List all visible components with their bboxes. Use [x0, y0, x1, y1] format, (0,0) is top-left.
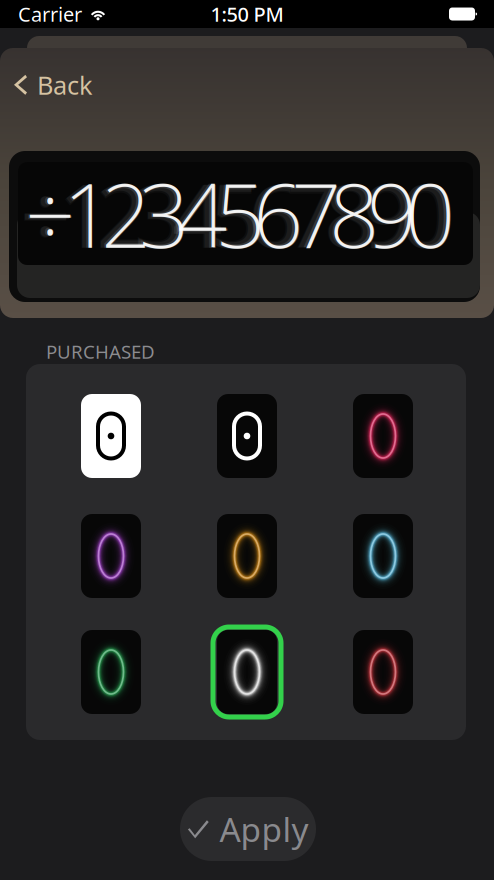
- staticText: 1: [58, 155, 128, 272]
- staticText: 2: [99, 155, 163, 272]
- button[interactable]: Calculator theme: [69, 618, 153, 726]
- staticText: 9: [362, 155, 433, 272]
- staticText: 2: [101, 155, 162, 272]
- staticText: 7: [291, 155, 352, 272]
- staticText: 6: [248, 155, 318, 272]
- staticText: ÷: [25, 155, 86, 272]
- staticText: 0: [406, 155, 465, 272]
- staticText: 6: [251, 155, 315, 272]
- staticText: 4: [175, 155, 239, 272]
- staticText: 4: [172, 155, 242, 272]
- button[interactable]: Calculator theme: [69, 502, 153, 610]
- staticText: 6: [248, 155, 319, 272]
- button[interactable]: Calculator theme: [341, 618, 425, 726]
- staticText: ÷: [20, 155, 90, 272]
- staticText: PURCHASED: [46, 339, 155, 364]
- button[interactable]: Calculator theme: [69, 382, 153, 490]
- staticText: 7: [289, 155, 353, 272]
- staticText: ÷: [20, 155, 91, 272]
- staticText: 5: [215, 155, 276, 272]
- staticText: 3: [134, 155, 204, 272]
- staticText: 5: [210, 155, 281, 272]
- staticText: Carrier: [18, 1, 82, 27]
- staticText: 9: [367, 155, 428, 272]
- staticText: 9: [368, 155, 427, 272]
- staticText: 0: [400, 155, 470, 272]
- staticText: 4: [178, 155, 237, 272]
- staticText: 9: [365, 155, 429, 272]
- staticText: 2: [96, 155, 167, 272]
- staticText: 0: [405, 155, 466, 272]
- button[interactable]: Back: [4, 57, 107, 113]
- staticText: 8: [330, 155, 389, 272]
- button[interactable]: Apply: [180, 797, 316, 861]
- staticText: 2: [102, 155, 161, 272]
- staticText: 5: [213, 155, 277, 272]
- staticText: 8: [329, 155, 390, 272]
- staticText: Back: [37, 68, 93, 102]
- button[interactable]: Calculator theme: [341, 382, 425, 490]
- button[interactable]: Calculator theme: [205, 502, 289, 610]
- staticText: 8: [324, 155, 394, 272]
- staticText: 1: [61, 155, 125, 272]
- staticText: 5: [216, 155, 275, 272]
- staticText: 2: [96, 155, 166, 272]
- staticText: 4: [177, 155, 238, 272]
- staticText: 8: [327, 155, 391, 272]
- staticText: 6: [253, 155, 314, 272]
- staticText: Apply: [219, 807, 308, 851]
- button[interactable]: Calculator theme: [205, 618, 289, 726]
- staticText: 8: [324, 155, 395, 272]
- staticText: 1:50 PM: [210, 1, 283, 27]
- staticText: 4: [172, 155, 243, 272]
- button[interactable]: Calculator theme: [341, 502, 425, 610]
- staticText: 3: [137, 155, 201, 272]
- staticText: 6: [254, 155, 313, 272]
- staticText: 3: [139, 155, 200, 272]
- staticText: 1: [58, 155, 129, 272]
- staticText: ÷: [23, 155, 87, 272]
- staticText: 3: [140, 155, 199, 272]
- button[interactable]: Calculator theme: [205, 382, 289, 490]
- staticText: ÷: [26, 155, 85, 272]
- staticText: 1: [63, 155, 124, 272]
- staticText: 0: [403, 155, 467, 272]
- staticText: 7: [292, 155, 351, 272]
- staticText: 7: [286, 155, 356, 272]
- staticText: 0: [400, 155, 471, 272]
- staticText: 5: [210, 155, 280, 272]
- staticText: 9: [362, 155, 432, 272]
- staticText: 3: [134, 155, 205, 272]
- staticText: 7: [286, 155, 357, 272]
- staticText: 1: [64, 155, 123, 272]
